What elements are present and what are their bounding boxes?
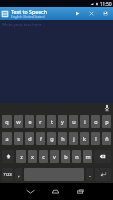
staticText: q — [5, 118, 9, 125]
staticText: m — [85, 153, 91, 160]
staticText: c — [42, 153, 45, 160]
button[interactable]: Voice input — [101, 103, 112, 113]
button[interactable]: ?123 — [2, 168, 13, 181]
staticText: v — [53, 153, 56, 160]
staticText: . — [89, 171, 91, 178]
staticText: d — [28, 135, 32, 142]
staticText: y — [61, 118, 64, 125]
button[interactable]: w — [14, 115, 23, 128]
button[interactable]: o — [91, 115, 100, 128]
staticText: s — [17, 135, 20, 142]
staticText: j — [73, 135, 75, 142]
button[interactable]: x — [28, 150, 37, 163]
button[interactable]: Shift — [2, 150, 14, 163]
staticText: k — [83, 135, 86, 142]
button[interactable]: v — [50, 150, 59, 163]
staticText: ñ — [105, 135, 109, 142]
staticText: h — [61, 135, 65, 142]
button[interactable]: r — [36, 115, 45, 128]
staticText: f — [40, 135, 42, 142]
button[interactable]: Enter — [95, 168, 111, 181]
button[interactable]: t — [47, 115, 56, 128]
button[interactable]: Play — [70, 7, 84, 20]
staticText: English (United States) — [11, 15, 45, 19]
button[interactable]: d — [25, 132, 34, 145]
staticText: r — [39, 118, 42, 125]
staticText: z — [20, 153, 23, 160]
button[interactable]: Back — [17, 183, 43, 200]
button[interactable]: . — [86, 168, 93, 181]
button[interactable]: f — [36, 132, 45, 145]
button[interactable]: s — [14, 132, 23, 145]
button[interactable]: j — [69, 132, 78, 145]
button[interactable]: , — [15, 168, 22, 181]
staticText: o — [94, 118, 98, 125]
button[interactable]: Save — [98, 7, 112, 20]
button[interactable]: p — [102, 115, 111, 128]
button[interactable]: u — [69, 115, 78, 128]
staticText: , — [18, 171, 20, 178]
button[interactable]: g — [47, 132, 56, 145]
button[interactable]: ñ — [102, 132, 111, 145]
staticText: b — [64, 153, 68, 160]
button[interactable]: Stop — [84, 7, 98, 20]
button[interactable]: l — [91, 132, 100, 145]
button[interactable]: m — [83, 150, 92, 163]
button[interactable]: z — [16, 150, 26, 163]
staticText: ?123 — [3, 172, 12, 177]
staticText: a — [5, 135, 9, 142]
staticText: Write your text here... — [2, 22, 45, 28]
staticText: t — [51, 118, 53, 125]
button[interactable]: e — [25, 115, 34, 128]
button[interactable]: c — [39, 150, 48, 163]
button[interactable]: i — [80, 115, 89, 128]
button[interactable]: k — [80, 132, 89, 145]
button[interactable]: Backspace — [94, 150, 111, 163]
staticText: n — [75, 153, 79, 160]
button[interactable]: q — [2, 115, 12, 128]
button[interactable]: Home — [43, 183, 68, 200]
staticText: i — [84, 118, 86, 125]
button[interactable]: Recents — [68, 183, 93, 200]
button[interactable]: y — [58, 115, 67, 128]
staticText: u — [72, 118, 76, 125]
staticText: p — [105, 118, 109, 125]
button[interactable]: b — [61, 150, 70, 163]
staticText: Text to Speech — [11, 8, 47, 15]
button[interactable]: a — [2, 132, 12, 145]
staticText: w — [16, 118, 21, 125]
staticText: l — [95, 135, 97, 142]
button[interactable]: n — [72, 150, 81, 163]
staticText: x — [31, 153, 34, 160]
staticText: e — [28, 118, 32, 125]
staticText: 11:50 — [100, 1, 112, 7]
staticText: g — [50, 135, 54, 142]
button[interactable]: h — [58, 132, 67, 145]
